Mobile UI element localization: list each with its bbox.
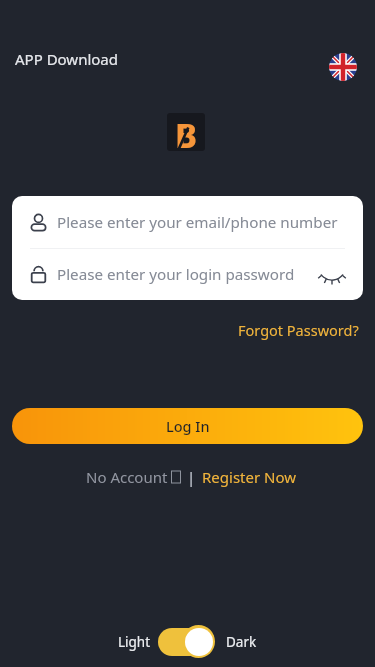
button[interactable]: Please enter your email/phone number	[12, 196, 363, 248]
staticText: No Account	[86, 467, 168, 487]
staticText: B	[175, 113, 198, 151]
button[interactable]	[318, 261, 346, 289]
staticText: Light	[118, 633, 151, 651]
staticText: Log In	[166, 416, 210, 436]
button[interactable]: Register Now	[202, 467, 297, 487]
staticText: Forgot Password?	[238, 320, 359, 340]
staticText: Register Now	[202, 467, 297, 487]
staticText: Please enter your email/phone number	[57, 212, 338, 233]
staticText: |	[187, 467, 196, 487]
staticText: Dark	[226, 633, 257, 651]
staticText: APP Download	[15, 49, 119, 69]
button[interactable]	[329, 53, 357, 81]
button[interactable]	[158, 625, 215, 658]
button[interactable]: Please enter your login password	[12, 249, 363, 300]
button[interactable]: Forgot Password?	[238, 320, 359, 340]
staticText: Please enter your login password	[57, 264, 295, 285]
button[interactable]: Log In	[12, 408, 363, 444]
